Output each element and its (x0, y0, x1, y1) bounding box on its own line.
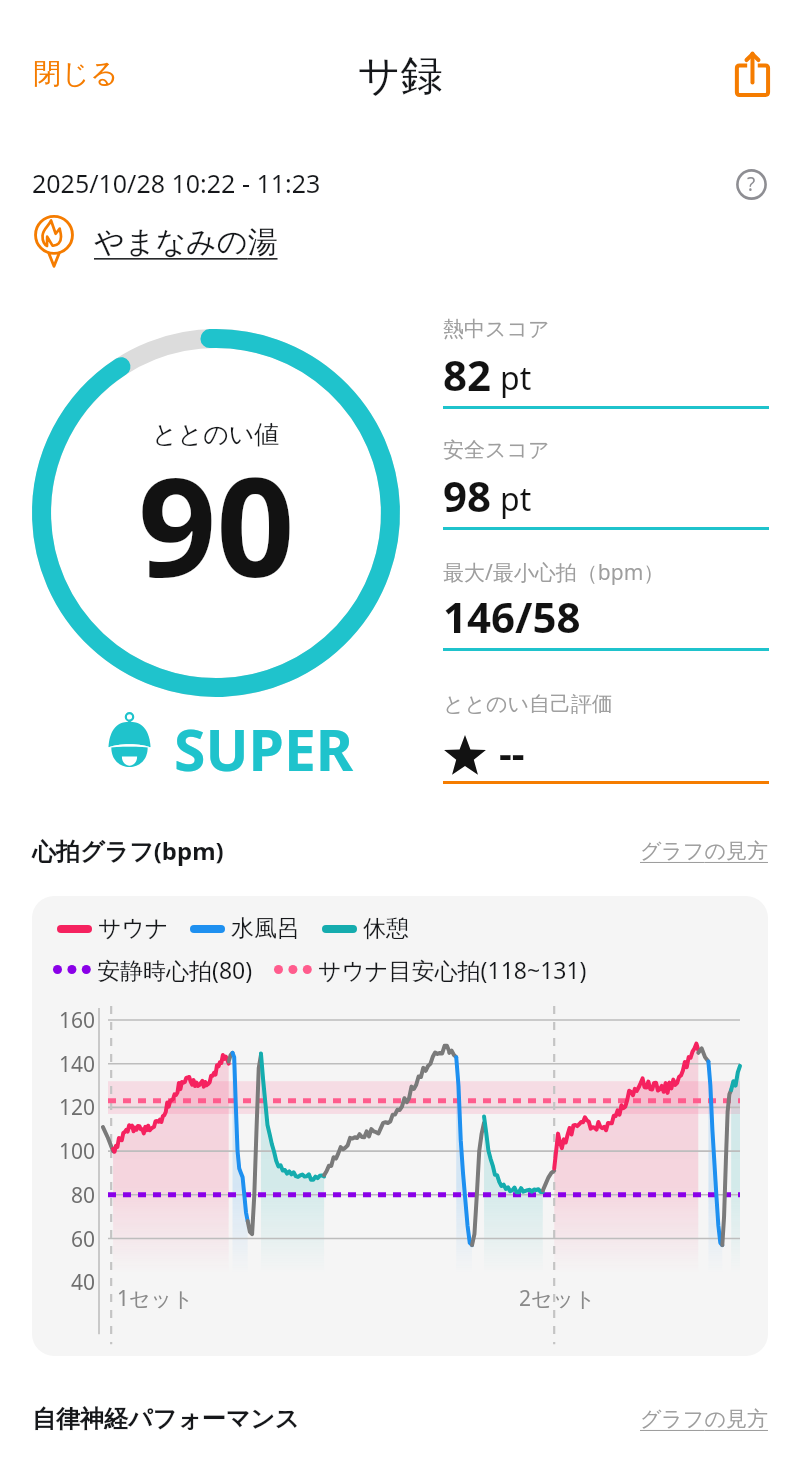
staticText: 40 (50, 1268, 95, 1297)
staticText: 98 (443, 467, 492, 524)
staticText: サウナ (98, 914, 169, 943)
staticText: 2025/10/28 10:22 - 11:23 (32, 166, 321, 200)
staticText: 82 (443, 346, 492, 403)
button[interactable]: グラフの見方 (640, 838, 768, 864)
staticText: 90 (138, 431, 295, 618)
staticText: 1セット (117, 1284, 194, 1313)
staticText: グラフの見方 (640, 1406, 768, 1432)
staticText: ? (747, 171, 756, 197)
staticText: 熱中スコア (443, 316, 550, 342)
staticText: 安全スコア (443, 437, 550, 463)
staticText: 80 (50, 1181, 95, 1210)
staticText: pt (500, 477, 532, 521)
staticText: 2セット (519, 1284, 596, 1313)
staticText: pt (500, 356, 532, 400)
staticText: ととのい自己評価 (443, 691, 613, 717)
staticText: 休憩 (363, 914, 409, 943)
staticText: -- (499, 725, 525, 779)
staticText: SUPER (174, 710, 354, 788)
button[interactable]: 閉じる (15, 46, 137, 101)
button[interactable]: やまなみの湯 (28, 212, 278, 264)
staticText: 最大/最小心拍（bpm） (443, 558, 665, 587)
staticText: 160 (50, 1006, 95, 1035)
button[interactable]: Help (736, 169, 767, 200)
staticText: 水風呂 (231, 914, 300, 943)
staticText: 自律神経パフォーマンス (32, 1404, 300, 1434)
staticText: やまなみの湯 (94, 223, 278, 261)
staticText: 100 (50, 1137, 95, 1166)
staticText: 心拍グラフ(bpm) (32, 834, 224, 867)
staticText: 閉じる (33, 56, 119, 91)
staticText: 140 (50, 1050, 95, 1079)
staticText: 60 (50, 1225, 95, 1254)
staticText: ととのい値 (152, 419, 280, 450)
staticText: グラフの見方 (640, 838, 768, 864)
button[interactable]: グラフの見方 (640, 1406, 768, 1432)
staticText: 安静時心拍(80) (97, 954, 253, 985)
staticText: サ録 (0, 50, 800, 103)
button[interactable]: Share (727, 46, 779, 98)
staticText: 146/58 (443, 588, 581, 645)
staticText: サウナ目安心拍(118~131) (318, 954, 587, 985)
staticText: 120 (50, 1093, 95, 1122)
